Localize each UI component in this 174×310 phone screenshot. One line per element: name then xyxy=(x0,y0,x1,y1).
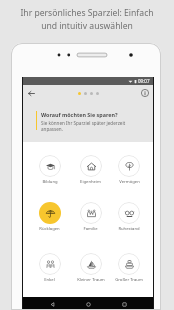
button[interactable]: Back xyxy=(23,85,39,101)
staticText: Ruhestand xyxy=(118,226,140,232)
button[interactable]: Back xyxy=(45,297,59,310)
button[interactable]: Großer Traum xyxy=(111,253,147,283)
staticText: Rücklagen xyxy=(39,226,60,232)
staticText: Bildung xyxy=(42,179,58,185)
button[interactable]: Kleiner Traum xyxy=(70,253,111,283)
staticText: Eigenheim xyxy=(80,179,101,185)
staticText: Enkel xyxy=(44,277,55,283)
staticText: Ihr persönliches Sparziel: Einfach und i… xyxy=(20,7,154,31)
button[interactable]: Familie xyxy=(70,202,111,232)
staticText: 09:07 xyxy=(138,78,150,84)
staticText: Großer Traum xyxy=(115,277,143,283)
button[interactable]: Rücklagen xyxy=(29,202,70,232)
button[interactable]: Eigenheim xyxy=(70,155,111,185)
staticText: Vermögen xyxy=(119,179,140,185)
staticText: Worauf möchten Sie sparen? xyxy=(41,111,118,118)
button[interactable]: Info xyxy=(137,85,153,101)
staticText: Sie können Ihr Sparziel später jederzeit… xyxy=(41,120,126,133)
button[interactable]: Ruhestand xyxy=(111,202,147,232)
button[interactable]: Bildung xyxy=(29,155,70,185)
staticText: Kleiner Traum xyxy=(77,277,105,283)
button[interactable]: Vermögen xyxy=(111,155,147,185)
button[interactable]: Recents xyxy=(117,297,131,310)
button[interactable]: Home xyxy=(81,297,95,310)
staticText: Familie xyxy=(83,226,98,232)
button[interactable]: Enkel xyxy=(29,253,70,283)
